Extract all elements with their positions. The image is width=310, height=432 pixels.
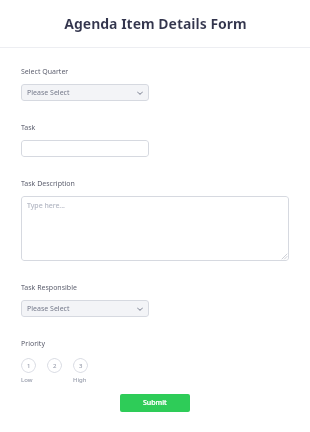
staticText: 3 (79, 362, 83, 370)
button[interactable]: Priority 3 (73, 358, 88, 373)
staticText: Please Select (27, 88, 70, 98)
staticText: Agenda Item Details Form (64, 14, 247, 33)
staticText: Select Quarter (21, 67, 69, 77)
staticText: Please Select (27, 304, 70, 314)
button[interactable] (21, 140, 149, 157)
staticText: Task (21, 123, 36, 133)
staticText: High (73, 376, 87, 384)
staticText: Task Responsible (21, 283, 77, 293)
staticText: Priority (21, 339, 45, 349)
staticText: 1 (27, 362, 31, 370)
button[interactable]: Submit (120, 394, 190, 412)
button[interactable]: Priority 1 (21, 358, 36, 373)
button[interactable]: Priority 2 (47, 358, 62, 373)
button[interactable]: Please Select (21, 300, 149, 317)
staticText: Submit (143, 398, 167, 408)
button[interactable]: Please Select (21, 84, 149, 101)
staticText: Low (21, 376, 33, 384)
staticText: 2 (53, 362, 57, 370)
button[interactable]: Type here... (21, 196, 289, 261)
staticText: Type here... (27, 201, 65, 211)
staticText: Task Description (21, 179, 75, 189)
